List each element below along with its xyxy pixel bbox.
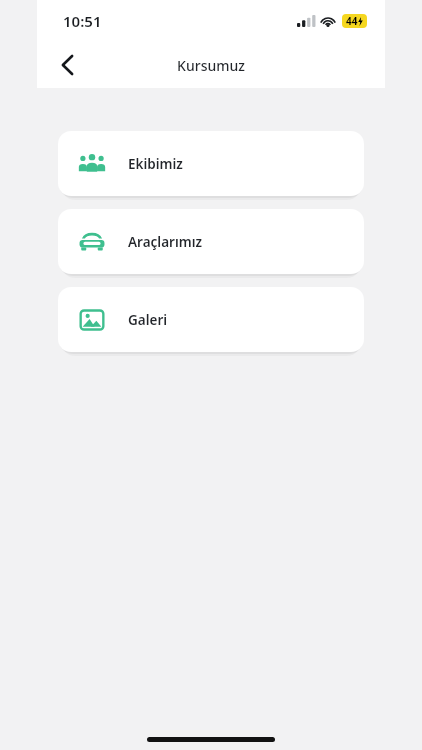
staticText: Kursumuz [177, 56, 245, 75]
staticText: Ekibimiz [128, 155, 183, 173]
button[interactable]: Ekibimiz [58, 131, 364, 196]
staticText: 10:51 [63, 11, 102, 31]
staticText: Galeri [128, 311, 168, 329]
button[interactable]: Araçlarımız [58, 209, 364, 274]
button[interactable]: Galeri [58, 287, 364, 352]
staticText: 44 [346, 14, 358, 28]
staticText: Araçlarımız [128, 233, 203, 251]
button[interactable]: Back [47, 45, 87, 85]
